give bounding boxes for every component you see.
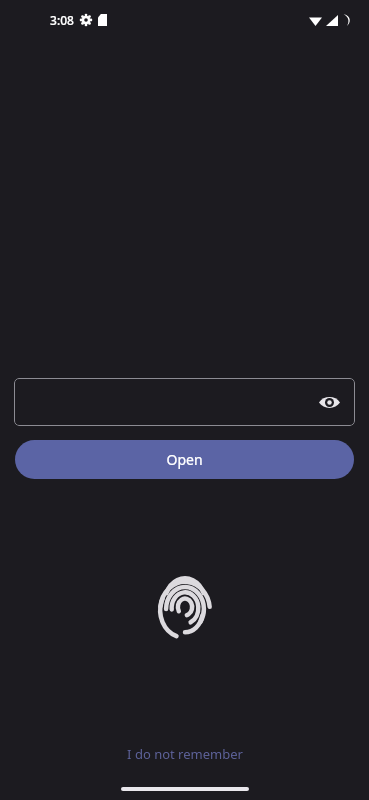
- button[interactable]: I do not remember: [117, 742, 253, 766]
- button[interactable]: Open: [15, 440, 354, 479]
- staticText: I do not remember: [127, 745, 243, 763]
- button[interactable]: Unlock with fingerprint: [154, 572, 216, 642]
- button[interactable]: Show password: [14, 378, 355, 426]
- staticText: Open: [166, 450, 203, 469]
- staticText: 3:08: [50, 12, 74, 28]
- button[interactable]: Show password: [313, 386, 345, 418]
